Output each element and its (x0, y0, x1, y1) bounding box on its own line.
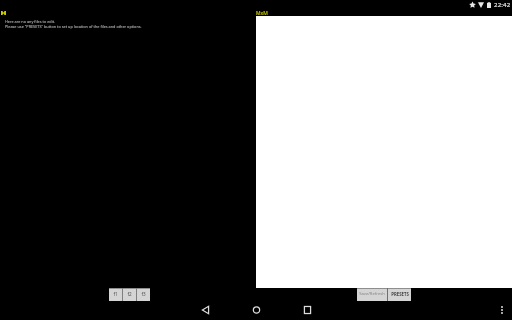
staticText: f2 (127, 291, 132, 297)
staticText: Here are no any files to edit. (5, 19, 56, 24)
staticText: Please use "PRESETS" button to set up lo… (5, 24, 142, 29)
button[interactable]: Home (247, 299, 265, 320)
button[interactable]: f2 (123, 289, 136, 301)
button[interactable]: PRESETS (388, 289, 411, 301)
staticText: MxM (256, 10, 268, 17)
staticText: f3 (141, 291, 146, 297)
staticText: 22:42 (494, 1, 511, 9)
button[interactable]: f3 (137, 289, 150, 301)
button[interactable]: Save/Refresh (357, 289, 387, 301)
staticText: PRESETS (391, 291, 409, 297)
button[interactable]: f1 (109, 289, 122, 301)
button[interactable]: More options (492, 299, 512, 320)
staticText: Save/Refresh (359, 291, 385, 297)
button[interactable]: Back (196, 299, 214, 320)
staticText: f1 (113, 291, 118, 297)
button[interactable]: Recent apps (298, 299, 316, 320)
